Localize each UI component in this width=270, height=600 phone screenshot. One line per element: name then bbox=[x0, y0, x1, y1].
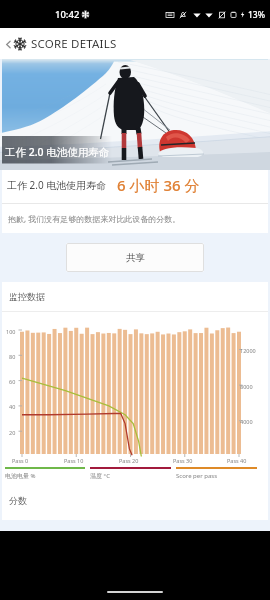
staticText: 12000 bbox=[240, 347, 256, 354]
staticText: 抱歉, 我们没有足够的数据来对比此设备的分数。 bbox=[8, 213, 181, 224]
staticText: SCORE DETAILS bbox=[31, 36, 117, 52]
button[interactable]: Back bbox=[2, 38, 14, 50]
staticText: 100 bbox=[6, 328, 16, 335]
staticText: Pass 20 bbox=[119, 457, 139, 464]
staticText: Pass 10 bbox=[64, 457, 84, 464]
staticText: 40 bbox=[9, 403, 16, 410]
staticText: 监控数据 bbox=[9, 291, 45, 302]
staticText: 温度 °C bbox=[90, 472, 176, 480]
staticText: 共享 bbox=[126, 252, 145, 264]
staticText: 13% bbox=[248, 9, 265, 21]
staticText: 60 bbox=[9, 378, 16, 385]
staticText: 工作 2.0 电池使用寿命 bbox=[7, 178, 107, 192]
staticText: Pass 30 bbox=[173, 457, 193, 464]
staticText: 80 bbox=[9, 353, 16, 360]
staticText: 10:42 bbox=[55, 8, 80, 21]
staticText: 4000 bbox=[240, 418, 253, 425]
staticText: 20 bbox=[9, 429, 16, 436]
staticText: Pass 40 bbox=[227, 457, 247, 464]
staticText: Pass 0 bbox=[12, 457, 29, 464]
staticText: 6 小时 36 分 bbox=[117, 175, 200, 195]
button[interactable]: 共享 bbox=[66, 243, 204, 272]
staticText: 8000 bbox=[240, 383, 253, 390]
staticText: 分数 bbox=[9, 495, 27, 506]
staticText: 工作 2.0 电池使用寿命 bbox=[5, 145, 110, 159]
staticText: Score per pass bbox=[176, 472, 262, 480]
staticText: 电池电量 % bbox=[5, 472, 90, 480]
